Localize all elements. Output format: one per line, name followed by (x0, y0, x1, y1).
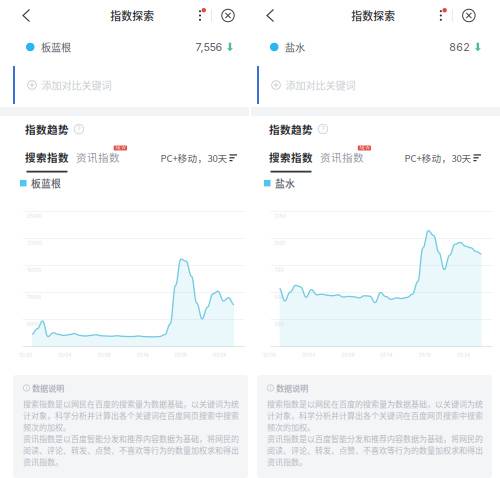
button[interactable]: PC+移动，30天 (160, 151, 237, 172)
staticText: 板蓝根 (41, 40, 71, 54)
staticText: 资讯指数是以百度智能分发和推荐内容数据为基础，将网民的阅读、评论、转发、点赞、不… (267, 433, 483, 467)
staticText: 1000 (274, 240, 285, 246)
staticText: 12/30 (19, 352, 32, 358)
staticText: 01/19 (175, 352, 187, 358)
staticText: 01/19 (419, 352, 431, 358)
staticText: 5000 (27, 321, 39, 327)
staticText: 板蓝根 (31, 176, 61, 190)
staticText: 500 (274, 294, 283, 300)
button[interactable]: Back (0, 0, 43, 30)
staticText: 25000 (27, 213, 42, 219)
staticText: 01/14 (137, 352, 149, 358)
staticText: 1250 (274, 213, 285, 219)
staticText: 搜索指数 (269, 149, 313, 165)
button[interactable]: PC+移动，30天 (404, 151, 481, 172)
staticText: 01/14 (381, 352, 393, 358)
button[interactable]: 搜索指数 (25, 149, 69, 173)
staticText: 01/24 (457, 352, 470, 358)
staticText: 01/09 (97, 352, 110, 358)
staticText: 数据说明 (32, 382, 64, 394)
staticText: 资讯指数 (320, 149, 364, 165)
button[interactable]: Close (212, 5, 249, 25)
staticText: NEW (115, 145, 125, 151)
staticText: 添加对比关键词 (285, 78, 355, 92)
staticText: 7,556 (195, 40, 222, 53)
staticText: 搜索指数 (25, 149, 69, 165)
staticText: 盐水 (285, 40, 305, 54)
button[interactable]: Back (251, 0, 287, 30)
staticText: 01/04 (58, 352, 71, 358)
staticText: 15000 (27, 267, 41, 273)
button[interactable]: More (430, 6, 452, 24)
button[interactable]: 添加对比关键词 (15, 63, 111, 107)
staticText: PC+移动，30天 (404, 151, 471, 165)
staticText: 指数探索 (351, 8, 395, 23)
button[interactable]: 搜索指数 (269, 149, 313, 173)
staticText: 资讯指数是以百度智能分发和推荐内容数据为基础，将网民的阅读、评论、转发、点赞、不… (23, 433, 239, 467)
staticText: 指数趋势 (269, 121, 313, 137)
staticText: 指数趋势 (25, 121, 69, 137)
staticText: ? (77, 125, 81, 133)
staticText: 搜索指数是以网民在百度的搜索量为数据基础，以关键词为统计对象，科学分析并计算出各… (23, 398, 239, 433)
staticText: 数据说明 (276, 382, 308, 394)
staticText: 10000 (27, 294, 41, 300)
staticText: 资讯指数 (76, 149, 120, 165)
staticText: 12/30 (263, 352, 276, 358)
staticText: 盐水 (275, 176, 295, 190)
staticText: 添加对比关键词 (41, 78, 111, 92)
staticText: 01/24 (213, 352, 226, 358)
staticText: 250 (274, 321, 283, 327)
staticText: 搜索指数是以网民在百度的搜索量为数据基础，以关键词为统计对象，科学分析并计算出各… (267, 398, 483, 433)
staticText: 20000 (27, 240, 42, 246)
staticText: 01/04 (302, 352, 315, 358)
button[interactable]: 添加对比关键词 (259, 63, 355, 107)
staticText: NEW (359, 145, 369, 151)
staticText: 指数探索 (110, 8, 154, 23)
staticText: PC+移动，30天 (160, 151, 227, 165)
button[interactable]: Close (453, 5, 500, 25)
button[interactable]: More (189, 6, 211, 24)
button[interactable]: 资讯指数 (76, 145, 127, 173)
staticText: 862 (449, 40, 470, 53)
staticText: 01/09 (341, 352, 354, 358)
staticText: ? (321, 125, 325, 133)
staticText: 750 (274, 267, 283, 273)
button[interactable]: 资讯指数 (320, 145, 371, 173)
